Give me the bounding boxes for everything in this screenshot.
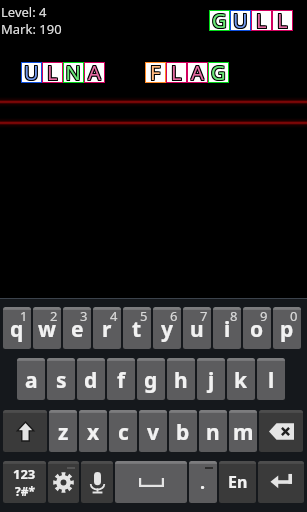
button[interactable]: f: [107, 358, 135, 400]
button[interactable]: b: [169, 410, 197, 452]
button[interactable]: i: [213, 307, 241, 349]
staticText: Level: 4: [1, 3, 47, 21]
button[interactable]: t: [123, 307, 151, 349]
staticText: b: [176, 418, 190, 447]
staticText: En: [228, 471, 248, 493]
button[interactable]: Symbols: [3, 461, 46, 503]
button[interactable]: o: [243, 307, 271, 349]
staticText: 5: [140, 307, 148, 325]
button[interactable]: Space: [115, 461, 187, 503]
staticText: n: [206, 418, 220, 447]
button[interactable]: y: [153, 307, 181, 349]
button[interactable]: .: [189, 461, 217, 503]
staticText: q: [10, 315, 24, 344]
button[interactable]: p: [273, 307, 301, 349]
staticText: 4: [110, 307, 118, 325]
staticText: 7: [200, 307, 208, 325]
button[interactable]: Backspace: [259, 410, 303, 452]
button[interactable]: z: [49, 410, 77, 452]
button[interactable]: r: [93, 307, 121, 349]
staticText: ?#*: [15, 483, 35, 499]
staticText: e: [71, 315, 84, 344]
button[interactable]: w: [33, 307, 61, 349]
button[interactable]: d: [77, 358, 105, 400]
staticText: 9: [260, 307, 268, 325]
button[interactable]: k: [227, 358, 255, 400]
staticText: Mark: 190: [1, 20, 62, 38]
staticText: 123: [13, 465, 36, 483]
staticText: m: [233, 418, 254, 447]
button[interactable]: l: [257, 358, 285, 400]
staticText: d: [84, 366, 98, 395]
staticText: t: [132, 315, 142, 344]
staticText: v: [147, 418, 159, 447]
staticText: j: [208, 366, 215, 395]
staticText: h: [174, 366, 188, 395]
staticText: o: [250, 315, 264, 344]
button[interactable]: a: [17, 358, 45, 400]
staticText: 6: [170, 307, 178, 325]
staticText: 8: [230, 307, 238, 325]
staticText: p: [280, 315, 294, 344]
button[interactable]: n: [199, 410, 227, 452]
staticText: z: [58, 418, 69, 447]
button[interactable]: Shift: [3, 410, 47, 452]
button[interactable]: j: [197, 358, 225, 400]
staticText: 0: [290, 307, 298, 325]
staticText: .: [200, 470, 206, 495]
button[interactable]: Settings: [48, 461, 79, 503]
staticText: s: [56, 366, 67, 395]
staticText: 3: [80, 307, 88, 325]
button[interactable]: v: [139, 410, 167, 452]
button[interactable]: g: [137, 358, 165, 400]
staticText: k: [234, 366, 248, 395]
button[interactable]: e: [63, 307, 91, 349]
staticText: w: [38, 315, 56, 344]
staticText: a: [25, 366, 38, 395]
staticText: g: [144, 366, 158, 395]
button[interactable]: Language: [219, 461, 256, 503]
button[interactable]: Voice input: [81, 461, 113, 503]
button[interactable]: x: [79, 410, 107, 452]
button[interactable]: h: [167, 358, 195, 400]
staticText: l: [268, 366, 275, 395]
staticText: x: [87, 418, 100, 447]
button[interactable]: c: [109, 410, 137, 452]
staticText: c: [118, 418, 129, 447]
staticText: 1: [20, 307, 28, 325]
button[interactable]: q: [3, 307, 31, 349]
staticText: r: [102, 315, 112, 344]
staticText: y: [161, 315, 173, 344]
staticText: i: [224, 315, 231, 344]
button[interactable]: Enter: [258, 461, 304, 503]
button[interactable]: s: [47, 358, 75, 400]
button[interactable]: m: [229, 410, 257, 452]
button[interactable]: u: [183, 307, 211, 349]
staticText: f: [117, 366, 126, 395]
staticText: u: [190, 315, 204, 344]
staticText: 2: [50, 307, 58, 325]
